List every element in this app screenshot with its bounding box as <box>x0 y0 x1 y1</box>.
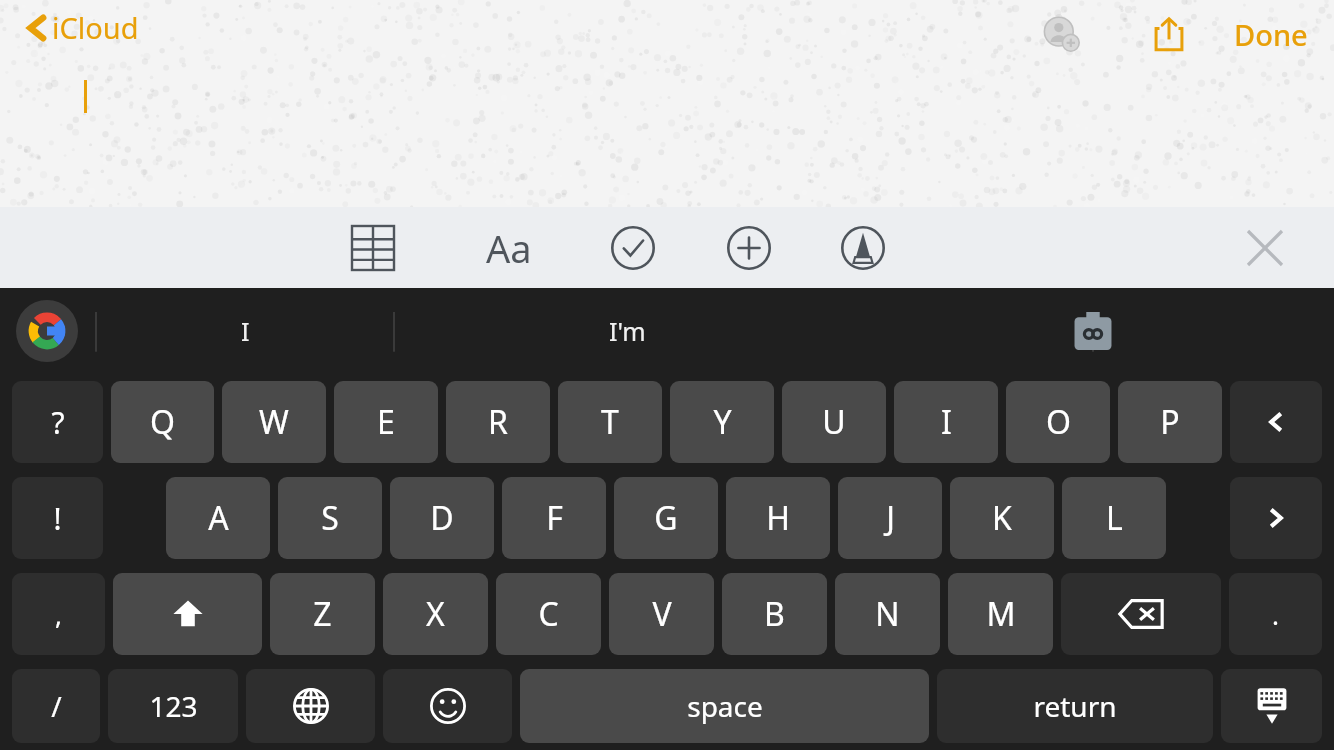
staticText: J <box>886 496 895 540</box>
button[interactable]: Move left <box>1230 381 1322 463</box>
button[interactable]: , <box>12 573 105 655</box>
button[interactable]: Attach <box>721 220 777 276</box>
button[interactable]: Hide keyboard <box>1221 669 1322 743</box>
button[interactable]: W <box>222 381 326 463</box>
button[interactable]: G <box>614 477 718 559</box>
button[interactable]: F <box>502 477 606 559</box>
button[interactable]: I <box>96 288 394 374</box>
button[interactable]: Shift <box>113 573 262 655</box>
button[interactable]: D <box>390 477 494 559</box>
button[interactable]: C <box>496 573 601 655</box>
button[interactable]: H <box>726 477 830 559</box>
staticText: S <box>321 496 339 540</box>
button[interactable]: B <box>722 573 827 655</box>
staticText: ! <box>53 498 62 539</box>
button[interactable]: X <box>383 573 488 655</box>
button[interactable]: . <box>1229 573 1322 655</box>
staticText: 123 <box>149 687 198 725</box>
button[interactable]: 123 <box>108 669 238 743</box>
button[interactable]: I <box>894 381 998 463</box>
button[interactable]: T <box>558 381 662 463</box>
button[interactable]: U <box>782 381 886 463</box>
button[interactable]: Done <box>1226 9 1316 60</box>
staticText: Q <box>150 400 175 444</box>
staticText: iCloud <box>52 8 139 47</box>
staticText: V <box>652 592 672 636</box>
staticText: L <box>1106 496 1123 540</box>
staticText: U <box>822 400 846 444</box>
button[interactable]: P <box>1118 381 1222 463</box>
staticText: B <box>764 592 785 636</box>
staticText: A <box>208 496 229 540</box>
button[interactable]: ? <box>12 381 103 463</box>
staticText: O <box>1046 400 1071 444</box>
staticText: D <box>430 496 454 540</box>
button[interactable]: R <box>446 381 550 463</box>
staticText: Z <box>313 592 332 636</box>
button[interactable]: N <box>835 573 940 655</box>
button[interactable]: Aa <box>479 218 539 278</box>
button[interactable]: iCloud <box>22 4 143 51</box>
button[interactable]: Backspace <box>1061 573 1221 655</box>
button[interactable]: I'm <box>394 288 860 374</box>
staticText: P <box>1160 400 1180 444</box>
staticText: R <box>488 400 508 444</box>
staticText: T <box>601 400 619 444</box>
staticText: I <box>241 314 250 348</box>
button[interactable]: A <box>166 477 270 559</box>
button[interactable]: space <box>520 669 929 743</box>
staticText: Done <box>1234 15 1308 54</box>
button[interactable]: Move right <box>1230 477 1322 559</box>
button[interactable]: Clipboard <box>860 288 1326 374</box>
staticText: return <box>1033 687 1117 725</box>
staticText: G <box>654 496 678 540</box>
button[interactable]: Table <box>345 220 401 276</box>
button[interactable]: J <box>838 477 942 559</box>
staticText: . <box>1272 597 1279 632</box>
staticText: space <box>687 687 763 725</box>
staticText: Y <box>713 400 732 444</box>
staticText: K <box>992 496 1012 540</box>
staticText: X <box>426 592 445 636</box>
button[interactable]: Q <box>111 381 214 463</box>
button[interactable]: O <box>1006 381 1110 463</box>
button[interactable]: L <box>1062 477 1166 559</box>
button[interactable]: Emoji <box>383 669 512 743</box>
button[interactable]: Markup <box>835 220 891 276</box>
staticText: W <box>259 400 289 444</box>
staticText: C <box>538 592 559 636</box>
button[interactable]: V <box>609 573 714 655</box>
staticText: E <box>377 400 395 444</box>
staticText: N <box>875 592 900 636</box>
button[interactable]: Checklist <box>605 220 661 276</box>
button[interactable]: / <box>12 669 100 743</box>
staticText: / <box>51 687 62 725</box>
staticText: F <box>546 496 563 540</box>
button[interactable]: S <box>278 477 382 559</box>
staticText: Aa <box>486 222 532 274</box>
button[interactable]: ! <box>12 477 103 559</box>
button[interactable]: Add People <box>1034 6 1090 62</box>
button[interactable]: Share <box>1142 7 1196 61</box>
button[interactable]: Google <box>16 300 78 362</box>
staticText: H <box>766 496 790 540</box>
button[interactable]: K <box>950 477 1054 559</box>
staticText: ? <box>51 402 65 443</box>
button[interactable]: return <box>937 669 1213 743</box>
staticText: M <box>986 592 1016 636</box>
staticText: I <box>941 400 952 444</box>
staticText: I'm <box>609 314 646 348</box>
button[interactable]: Z <box>270 573 375 655</box>
button[interactable]: Change language <box>246 669 375 743</box>
button[interactable]: E <box>334 381 438 463</box>
button[interactable]: M <box>948 573 1053 655</box>
button[interactable]: Close <box>1240 223 1290 273</box>
button[interactable]: Y <box>670 381 774 463</box>
staticText: , <box>55 597 62 632</box>
